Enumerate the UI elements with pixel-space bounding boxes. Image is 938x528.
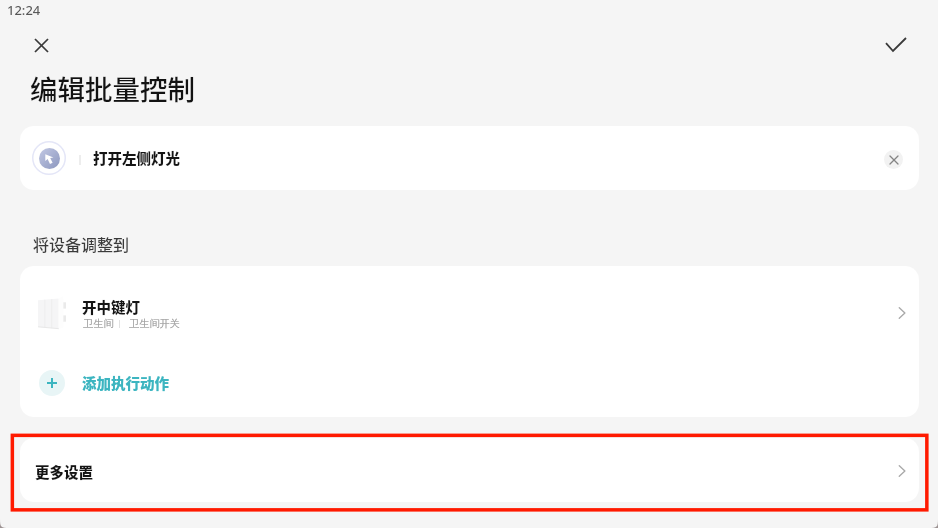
button[interactable]: Remove xyxy=(884,150,903,169)
staticText: 卫生间开关 xyxy=(129,317,180,330)
staticText: 卫生间 xyxy=(83,317,114,330)
button[interactable]: 开中键灯 xyxy=(20,266,919,346)
staticText: 编辑批量控制 xyxy=(30,68,195,108)
staticText: 12:24 xyxy=(7,1,41,19)
staticText: 添加执行动作 xyxy=(82,372,169,393)
staticText: 开中键灯 xyxy=(82,296,140,317)
button[interactable]: 更多设置 xyxy=(20,438,919,502)
button[interactable]: Confirm xyxy=(880,28,912,60)
staticText: 将设备调整到 xyxy=(33,232,130,255)
staticText: 打开左侧灯光 xyxy=(93,147,180,168)
button[interactable]: Close xyxy=(26,30,57,61)
button[interactable]: 打开左侧灯光 xyxy=(20,126,919,190)
button[interactable]: 添加执行动作 xyxy=(20,346,919,417)
staticText: 更多设置 xyxy=(35,461,93,482)
